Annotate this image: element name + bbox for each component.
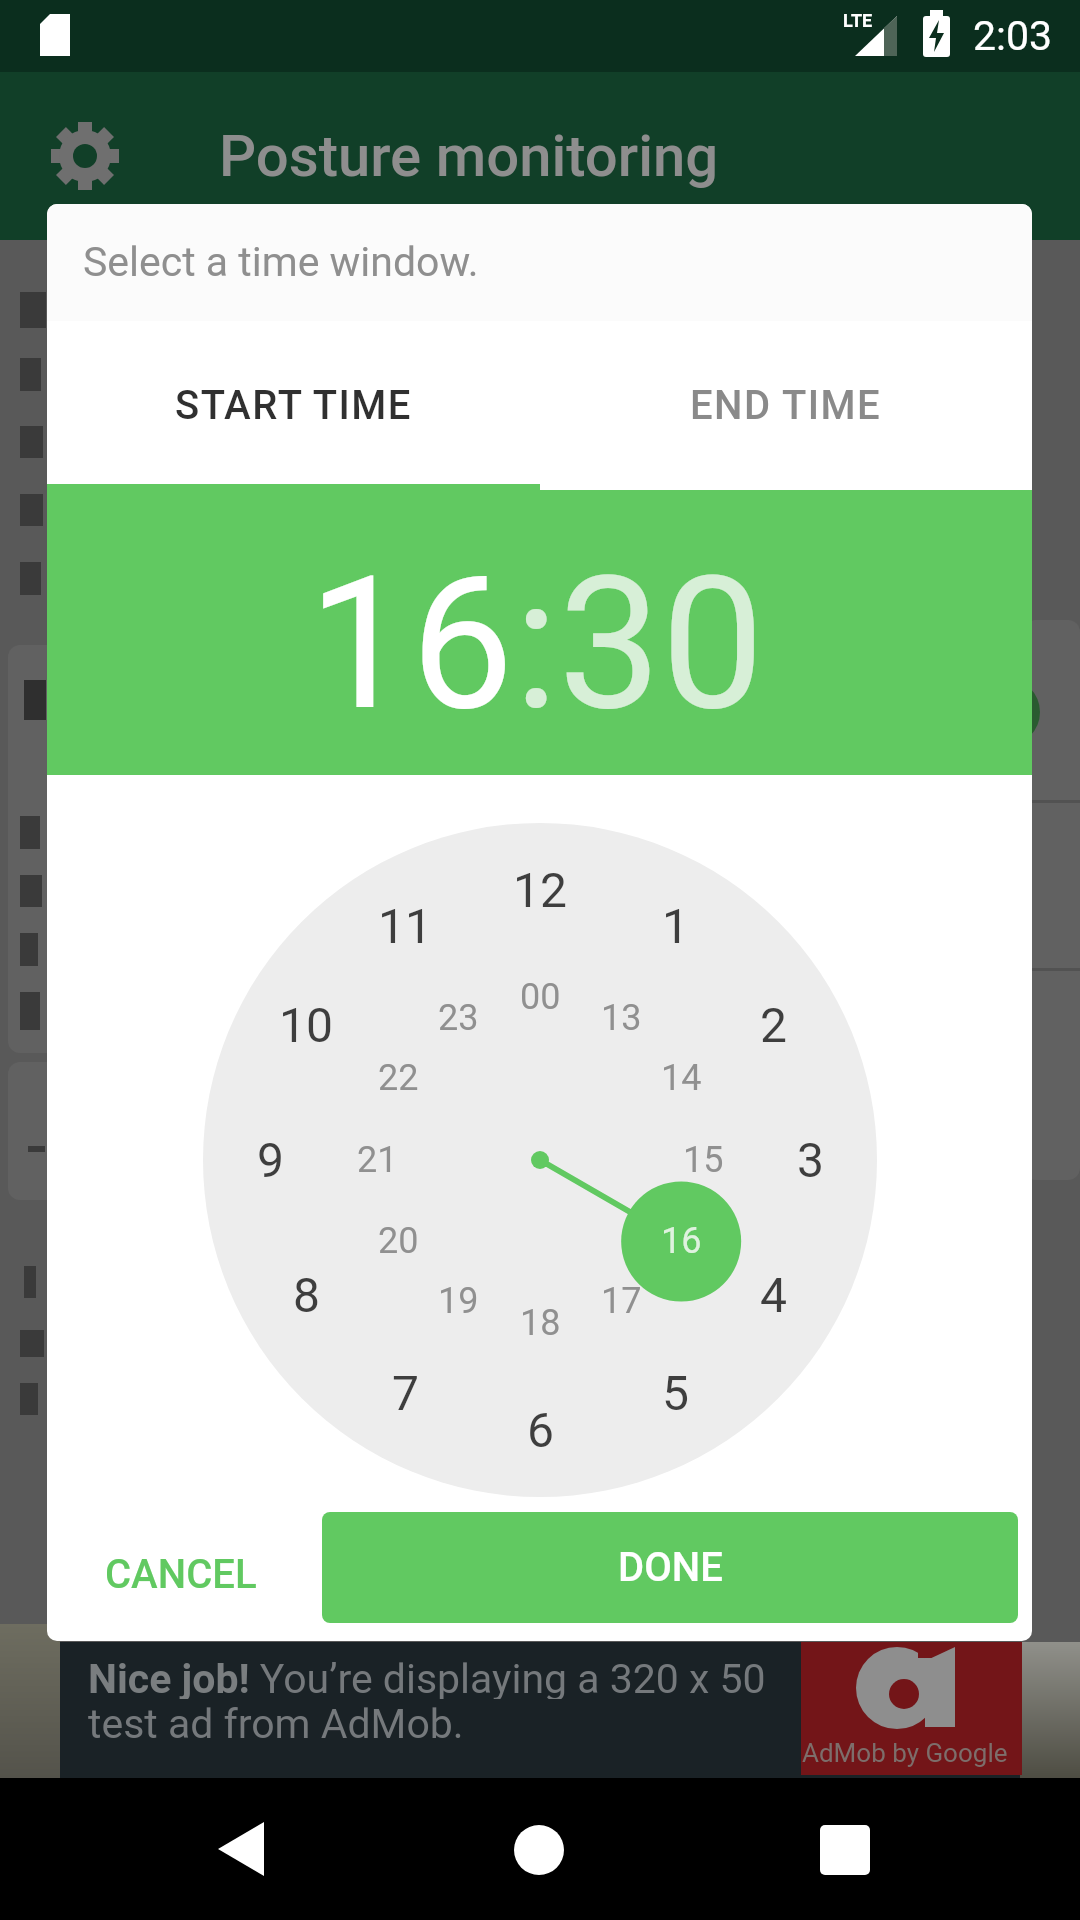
staticText: CANCEL <box>105 1551 257 1598</box>
staticText: 14 <box>661 1057 702 1099</box>
staticText: 12 <box>513 862 567 918</box>
staticText: 5 <box>662 1365 689 1421</box>
staticText: 20 <box>378 1220 419 1262</box>
button[interactable]: END TIME <box>540 321 1032 490</box>
staticText: Nice job! You’re displaying a 320 x 50 <box>88 1655 766 1699</box>
staticText: AdMob by Google <box>802 1738 1008 1768</box>
staticText: 23 <box>438 997 479 1039</box>
staticText: 19 <box>438 1280 479 1322</box>
staticText: 7 <box>392 1365 419 1421</box>
button[interactable]: DONE <box>322 1512 1018 1623</box>
staticText: 18 <box>520 1302 561 1344</box>
staticText: Posture monitoring <box>219 122 719 190</box>
staticText: Select a time window. <box>83 238 479 286</box>
staticText: START TIME <box>175 382 412 429</box>
staticText: 16 <box>308 537 514 751</box>
button[interactable]: CANCEL <box>71 1528 291 1620</box>
staticText: test ad from AdMob. <box>88 1700 464 1744</box>
button[interactable] <box>40 111 130 201</box>
staticText: 2 <box>760 997 787 1053</box>
staticText: :30 <box>514 537 765 751</box>
staticText: 21 <box>357 1139 398 1181</box>
staticText: 9 <box>257 1132 284 1188</box>
staticText: 2:03 <box>973 12 1053 60</box>
button[interactable] <box>489 1808 589 1892</box>
staticText: 3 <box>797 1132 824 1188</box>
staticText: 13 <box>601 997 642 1039</box>
button[interactable] <box>795 1808 895 1892</box>
staticText: 17 <box>601 1280 642 1322</box>
staticText: 00 <box>520 976 561 1018</box>
staticText: 8 <box>293 1267 320 1323</box>
staticText: 22 <box>378 1057 419 1099</box>
button[interactable]: START TIME <box>47 321 540 490</box>
staticText: 6 <box>527 1402 554 1458</box>
staticText: 15 <box>683 1139 724 1181</box>
staticText: END TIME <box>690 382 882 429</box>
staticText: 16 <box>661 1220 702 1262</box>
staticText: 4 <box>760 1267 787 1323</box>
staticText: LTE <box>843 10 873 31</box>
button[interactable] <box>190 1808 290 1892</box>
staticText: 11 <box>378 898 432 954</box>
staticText: 1 <box>662 898 689 954</box>
staticText: 10 <box>279 997 333 1053</box>
staticText: DONE <box>618 1544 723 1591</box>
